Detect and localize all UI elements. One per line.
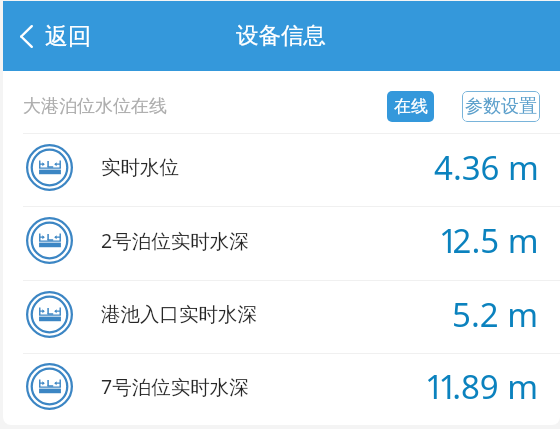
- staticText: 大港泊位水位在线: [23, 95, 167, 118]
- button[interactable]: 7号泊位实时水深: [3, 354, 560, 425]
- staticText: 12.5 m: [439, 218, 539, 263]
- staticText: 2号泊位实时水深: [101, 227, 249, 254]
- other: Back: [20, 25, 33, 48]
- button[interactable]: 参数设置: [462, 91, 540, 122]
- staticText: 7号泊位实时水深: [101, 373, 249, 400]
- button[interactable]: 实时水位: [3, 134, 560, 206]
- staticText: 港池入口实时水深: [101, 302, 257, 327]
- button[interactable]: 港池入口实时水深: [3, 281, 560, 353]
- staticText: 实时水位: [101, 155, 179, 180]
- staticText: 返回: [45, 22, 91, 51]
- button[interactable]: 在线: [387, 91, 434, 122]
- staticText: 参数设置: [465, 95, 537, 118]
- staticText: 设备信息: [236, 21, 326, 49]
- staticText: 11.89 m: [425, 364, 539, 409]
- staticText: 4.36 m: [434, 145, 539, 190]
- staticText: 在线: [394, 96, 428, 117]
- staticText: 5.2 m: [452, 292, 539, 337]
- button[interactable]: 2号泊位实时水深: [3, 207, 560, 280]
- button[interactable]: Back: [8, 14, 103, 59]
